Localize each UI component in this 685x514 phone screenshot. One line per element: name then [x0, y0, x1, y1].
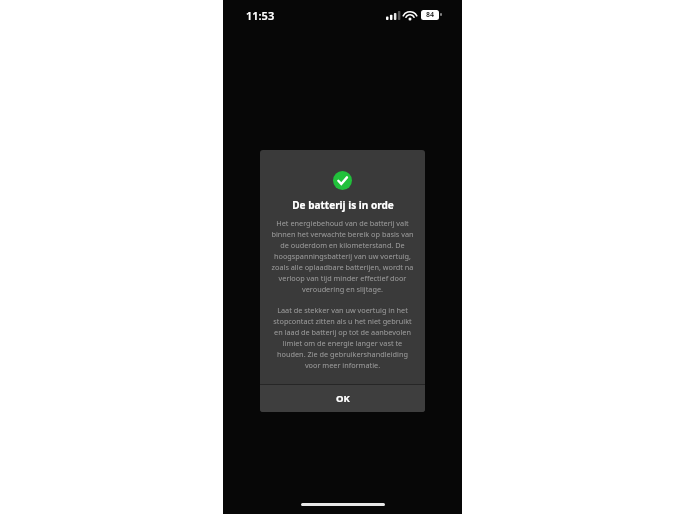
other: Battery status OK: [333, 171, 352, 190]
staticText: Laat de stekker van uw voertuig in het s…: [269, 305, 416, 370]
staticText: OK: [336, 392, 350, 405]
staticText: Het energiebehoud van de batterij valt b…: [269, 218, 416, 294]
button[interactable]: OK: [260, 385, 425, 412]
staticText: 11:53: [246, 8, 275, 23]
staticText: De batterij is in orde: [292, 198, 394, 212]
staticText: 84: [426, 10, 435, 20]
